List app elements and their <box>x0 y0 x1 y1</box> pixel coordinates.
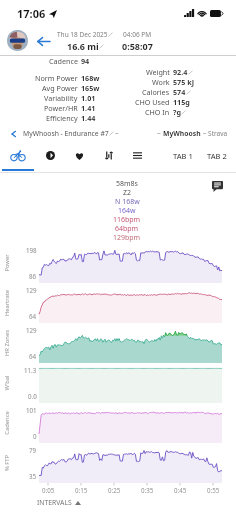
staticText: Work <box>152 77 170 87</box>
staticText: MyWhoosh <box>163 129 201 138</box>
staticText: Thu 18 Dec 2025 <box>57 30 108 39</box>
staticText: Heartrate <box>3 283 11 323</box>
button[interactable]: TAB 1 <box>173 142 193 169</box>
staticText: ~ Strava <box>201 129 228 138</box>
staticText: 0:45 <box>174 486 187 494</box>
button[interactable]: Power <box>36 142 65 169</box>
staticText: 0.0 <box>28 392 37 400</box>
staticText: % FTP <box>3 443 11 483</box>
staticText: 64 <box>29 352 37 360</box>
staticText: 79 <box>29 446 37 454</box>
staticText: 64 <box>29 312 37 320</box>
staticText: 0:55 <box>207 486 220 494</box>
staticText: HR Zones <box>3 323 11 363</box>
staticText: 35 <box>29 472 37 480</box>
staticText: 0:15 <box>75 486 88 494</box>
staticText: Power/HR <box>44 103 78 113</box>
staticText: 115g <box>173 97 190 107</box>
staticText: 168w <box>81 73 100 83</box>
staticText: Avg Power <box>42 83 78 93</box>
staticText: 0:05 <box>42 486 55 494</box>
button[interactable]: List <box>123 142 152 169</box>
button[interactable]: Back <box>33 31 53 51</box>
button[interactable]: Intervals <box>94 142 123 169</box>
staticText: 86 <box>29 272 37 280</box>
staticText: Cadence <box>3 403 11 443</box>
staticText: 129 <box>26 286 37 294</box>
staticText: 101 <box>26 406 37 414</box>
staticText: 0:58:07 <box>122 40 153 52</box>
staticText: TAB 1 <box>173 151 193 161</box>
staticText: CHO Used <box>135 97 170 107</box>
staticText: 04:06 PM <box>123 30 152 39</box>
staticText: 129 <box>26 326 37 334</box>
staticText: 1.41 <box>81 103 96 113</box>
staticText: 164w <box>118 206 136 215</box>
staticText: Efficiency <box>46 113 78 123</box>
button[interactable]: Comments <box>212 181 223 192</box>
staticText: 198 <box>26 246 37 254</box>
staticText: 165w <box>81 83 100 93</box>
staticText: 16.6 mi <box>67 40 99 52</box>
staticText: Power <box>3 243 11 283</box>
staticText: 94 <box>81 56 90 66</box>
staticText: 64bpm <box>115 224 139 233</box>
button[interactable]: Previous <box>8 128 19 139</box>
staticText: 17:06 <box>17 6 46 21</box>
staticText: 575 kJ <box>173 77 195 87</box>
staticText: Weight <box>146 67 170 77</box>
button[interactable]: Profile <box>7 30 28 51</box>
staticText: 11.3 <box>24 366 37 374</box>
staticText: 0:25 <box>108 486 121 494</box>
staticText: Norm Power <box>35 73 78 83</box>
staticText: MyWhoosh - Endurance #7 <box>23 129 109 138</box>
button[interactable]: Ride <box>0 142 36 169</box>
staticText: Cadence <box>49 56 78 66</box>
staticText: 92.4 <box>173 67 188 77</box>
staticText: 0:35 <box>141 486 154 494</box>
staticText: 0 <box>33 432 37 440</box>
staticText: CHO In <box>145 107 170 117</box>
button[interactable]: Heart rate <box>65 142 94 169</box>
staticText: 574 <box>173 87 186 97</box>
staticText: Variability <box>44 93 78 103</box>
staticText: N 168w <box>115 197 140 206</box>
staticText: INTERVALS <box>37 498 72 507</box>
staticText: 58m8s <box>116 179 138 188</box>
staticText: 1.01 <box>81 93 96 103</box>
staticText: W'bal <box>3 363 11 403</box>
staticText: TAB 2 <box>207 151 227 161</box>
staticText: 129bpm <box>113 233 141 242</box>
staticText: ~ <box>157 129 163 138</box>
staticText: 116bpm <box>113 215 141 224</box>
staticText: ~ <box>115 129 119 138</box>
button[interactable]: TAB 2 <box>207 142 227 169</box>
staticText: ?g <box>173 107 181 117</box>
staticText: 1.44 <box>81 113 96 123</box>
button[interactable]: INTERVALS <box>36 496 82 509</box>
staticText: Z2 <box>123 188 132 197</box>
staticText: Calories <box>142 87 170 97</box>
